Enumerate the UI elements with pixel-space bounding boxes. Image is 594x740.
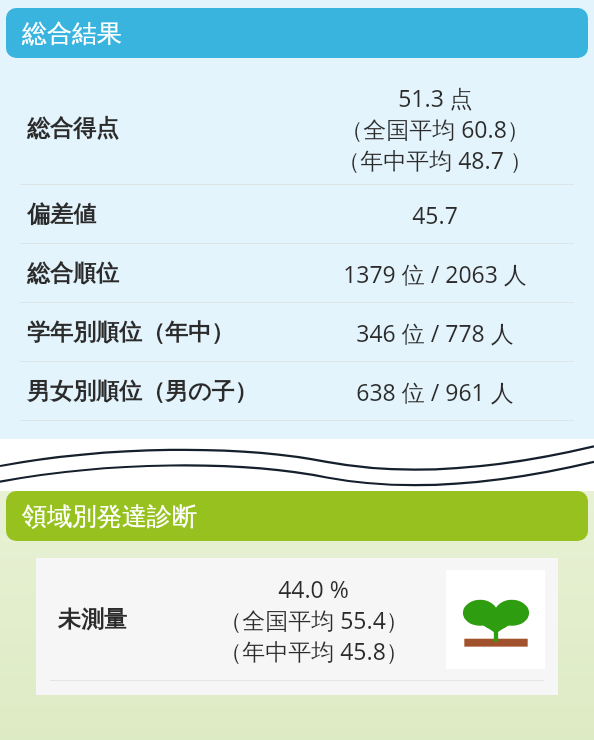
staticText: 学年別順位（年中） xyxy=(27,318,234,347)
staticText: （年中平均 48.7 ） xyxy=(337,144,533,175)
staticText: 総合結果 xyxy=(22,18,122,49)
staticText: 未測量 xyxy=(58,605,127,634)
staticText: （全国平均 55.4） xyxy=(219,604,409,635)
staticText: （年中平均 45.8） xyxy=(219,635,409,666)
staticText: 総合得点 xyxy=(27,114,119,143)
staticText: 51.3 点 xyxy=(398,82,473,113)
staticText: （全国平均 60.8） xyxy=(340,113,530,144)
staticText: 1379 位 / 2063 人 xyxy=(343,258,527,289)
button[interactable]: 男女別順位（男の子） xyxy=(0,362,594,421)
button[interactable]: 総合得点 xyxy=(0,72,594,185)
button[interactable]: 未測量 xyxy=(36,558,558,695)
staticText: 346 位 / 778 人 xyxy=(356,317,514,348)
button[interactable]: 総合順位 xyxy=(0,244,594,303)
button[interactable]: 学年別順位（年中） xyxy=(0,303,594,362)
other: Sprout growth icon xyxy=(446,570,545,669)
staticText: 45.7 xyxy=(412,199,458,230)
button[interactable]: 偏差値 xyxy=(0,185,594,244)
staticText: 偏差値 xyxy=(27,200,96,229)
staticText: 男女別順位（男の子） xyxy=(27,377,258,406)
staticText: 総合順位 xyxy=(27,259,119,288)
staticText: 44.0 % xyxy=(278,573,349,604)
button[interactable]: 領域別発達診断 xyxy=(6,491,588,541)
staticText: 638 位 / 961 人 xyxy=(356,376,514,407)
staticText: 領域別発達診断 xyxy=(22,501,197,532)
button[interactable]: 総合結果 xyxy=(6,8,588,58)
